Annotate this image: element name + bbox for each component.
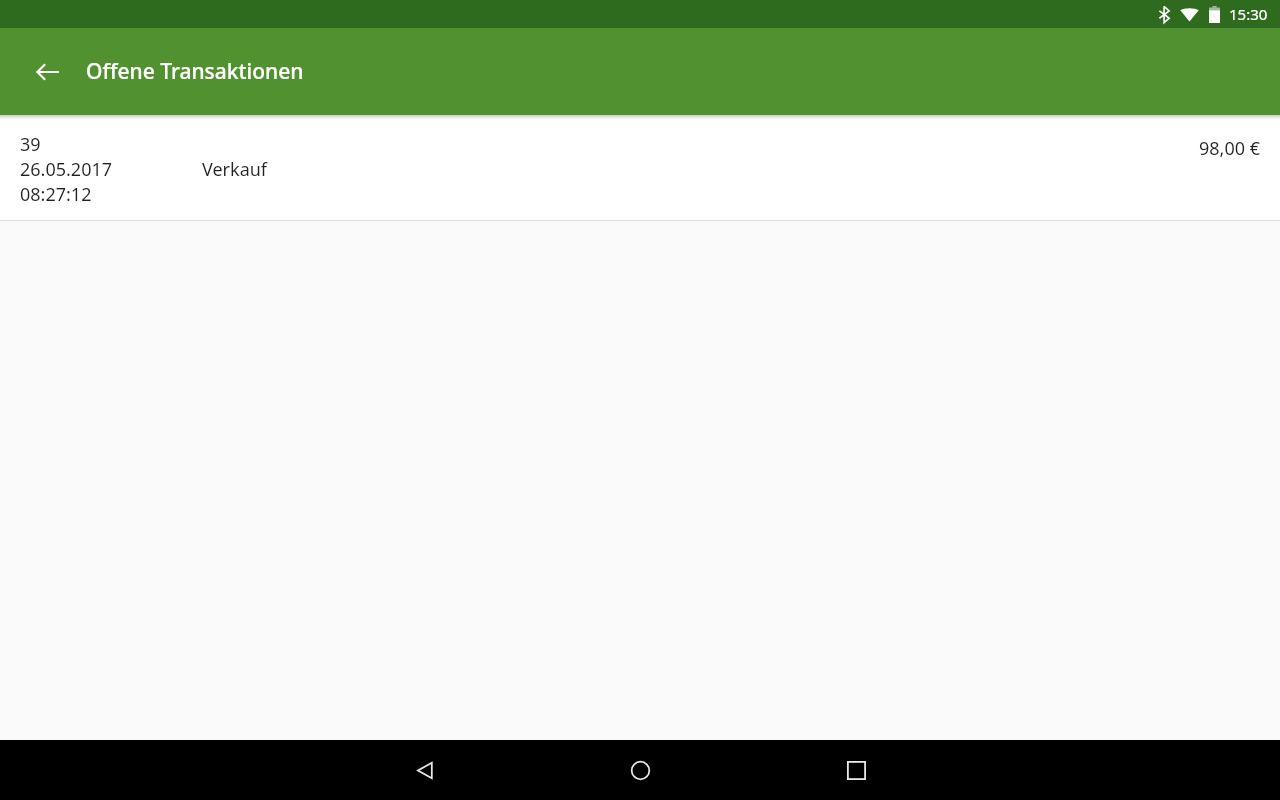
staticText: Verkauf [202,157,268,182]
staticText: 15:30 [1229,4,1268,24]
staticText: 39 [20,132,41,157]
button[interactable]: Back [401,746,449,794]
button[interactable]: Recent apps [832,746,880,794]
button[interactable]: Home [616,746,664,794]
button[interactable]: Back [24,48,72,96]
staticText: 98,00 € [1199,136,1260,161]
staticText: 26.05.2017 [20,157,113,182]
staticText: Offene Transaktionen [86,57,304,86]
staticText: 08:27:12 [20,182,92,207]
button[interactable]: 39 [0,119,1280,221]
